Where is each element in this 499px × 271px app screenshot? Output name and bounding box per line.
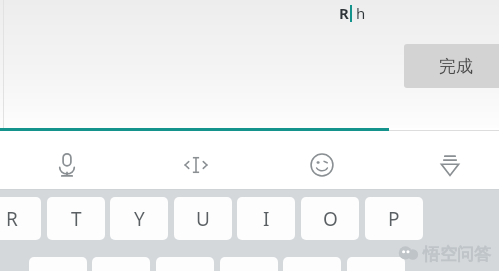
button[interactable]: Y xyxy=(110,197,168,240)
staticText: 悟空问答 xyxy=(423,244,491,265)
button[interactable]: L xyxy=(347,257,405,271)
button[interactable]: Emoji xyxy=(298,141,346,189)
button[interactable]: Move cursor xyxy=(172,141,220,189)
button[interactable]: R xyxy=(0,197,41,240)
staticText: 完成 xyxy=(439,56,473,77)
button[interactable]: T xyxy=(47,197,105,240)
staticText: Y xyxy=(134,206,145,232)
staticText: O xyxy=(323,206,338,232)
staticText: T xyxy=(71,206,82,232)
staticText: R xyxy=(6,206,18,232)
button[interactable]: P xyxy=(365,197,423,240)
button[interactable]: H xyxy=(156,257,214,271)
button[interactable]: G xyxy=(92,257,150,271)
button[interactable]: K xyxy=(283,257,341,271)
staticText: U xyxy=(196,206,210,232)
button[interactable]: Hide keyboard xyxy=(426,141,474,189)
button[interactable]: Voice input xyxy=(43,141,91,189)
button[interactable]: F xyxy=(29,257,87,271)
staticText: h xyxy=(356,3,366,23)
button[interactable]: 完成 xyxy=(404,44,499,88)
button[interactable]: J xyxy=(220,257,278,271)
staticText: R xyxy=(339,3,349,23)
button[interactable]: U xyxy=(174,197,232,240)
staticText: I xyxy=(263,206,270,232)
button[interactable]: O xyxy=(301,197,359,240)
staticText: P xyxy=(388,206,400,232)
button[interactable]: I xyxy=(237,197,295,240)
